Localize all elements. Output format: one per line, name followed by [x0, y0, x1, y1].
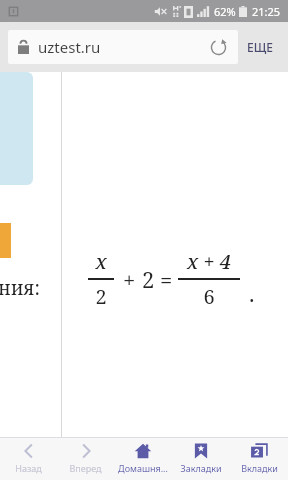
button[interactable]: ЕЩЕ — [238, 30, 282, 64]
staticText: Домашня... — [118, 462, 168, 474]
staticText: x + 4 — [187, 248, 231, 275]
button[interactable]: Bookmarks — [172, 438, 230, 480]
staticText: = — [160, 264, 173, 294]
staticText: Назад — [15, 462, 42, 474]
staticText: 62% — [214, 4, 236, 19]
button[interactable]: Home — [114, 438, 172, 480]
staticText: 2 — [142, 264, 155, 294]
button[interactable]: Tabs — [230, 438, 288, 480]
other: Back — [20, 442, 38, 460]
other: Bookmarks — [192, 442, 210, 460]
other: Tabs — [250, 442, 268, 460]
other: Home — [134, 442, 152, 460]
staticText: x — [95, 248, 107, 275]
staticText: 6 — [203, 283, 215, 310]
staticText: ния: — [0, 275, 40, 301]
staticText: ЕЩЕ — [247, 39, 273, 55]
staticText: 2 — [95, 283, 107, 310]
button[interactable]: Reload — [206, 35, 230, 59]
staticText: Вкладки — [241, 462, 278, 474]
other: Forward — [77, 442, 95, 460]
button[interactable]: Back — [0, 438, 57, 480]
staticText: 21:25 — [252, 4, 281, 19]
staticText: Вперед — [69, 462, 102, 474]
staticText: . — [249, 278, 255, 308]
staticText: uztest.ru — [38, 37, 101, 57]
staticText: + — [123, 264, 136, 294]
staticText: Закладки — [180, 462, 222, 474]
button[interactable]: uztest.ru — [8, 30, 238, 64]
button[interactable]: Forward — [57, 438, 114, 480]
